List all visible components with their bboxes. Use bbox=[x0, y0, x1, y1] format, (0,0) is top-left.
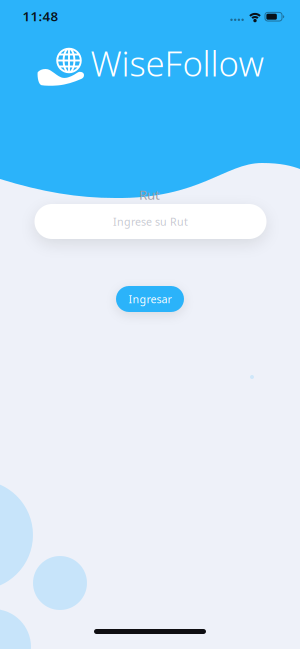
staticText: 11:48 bbox=[22, 7, 58, 25]
staticText: Ingrese su Rut bbox=[113, 214, 188, 229]
staticText: Rut bbox=[139, 186, 160, 203]
staticText: WiseFollow bbox=[90, 40, 264, 86]
button[interactable]: Ingresar bbox=[116, 286, 184, 312]
button[interactable]: Ingrese su Rut bbox=[34, 204, 266, 239]
staticText: Ingresar bbox=[128, 292, 171, 306]
